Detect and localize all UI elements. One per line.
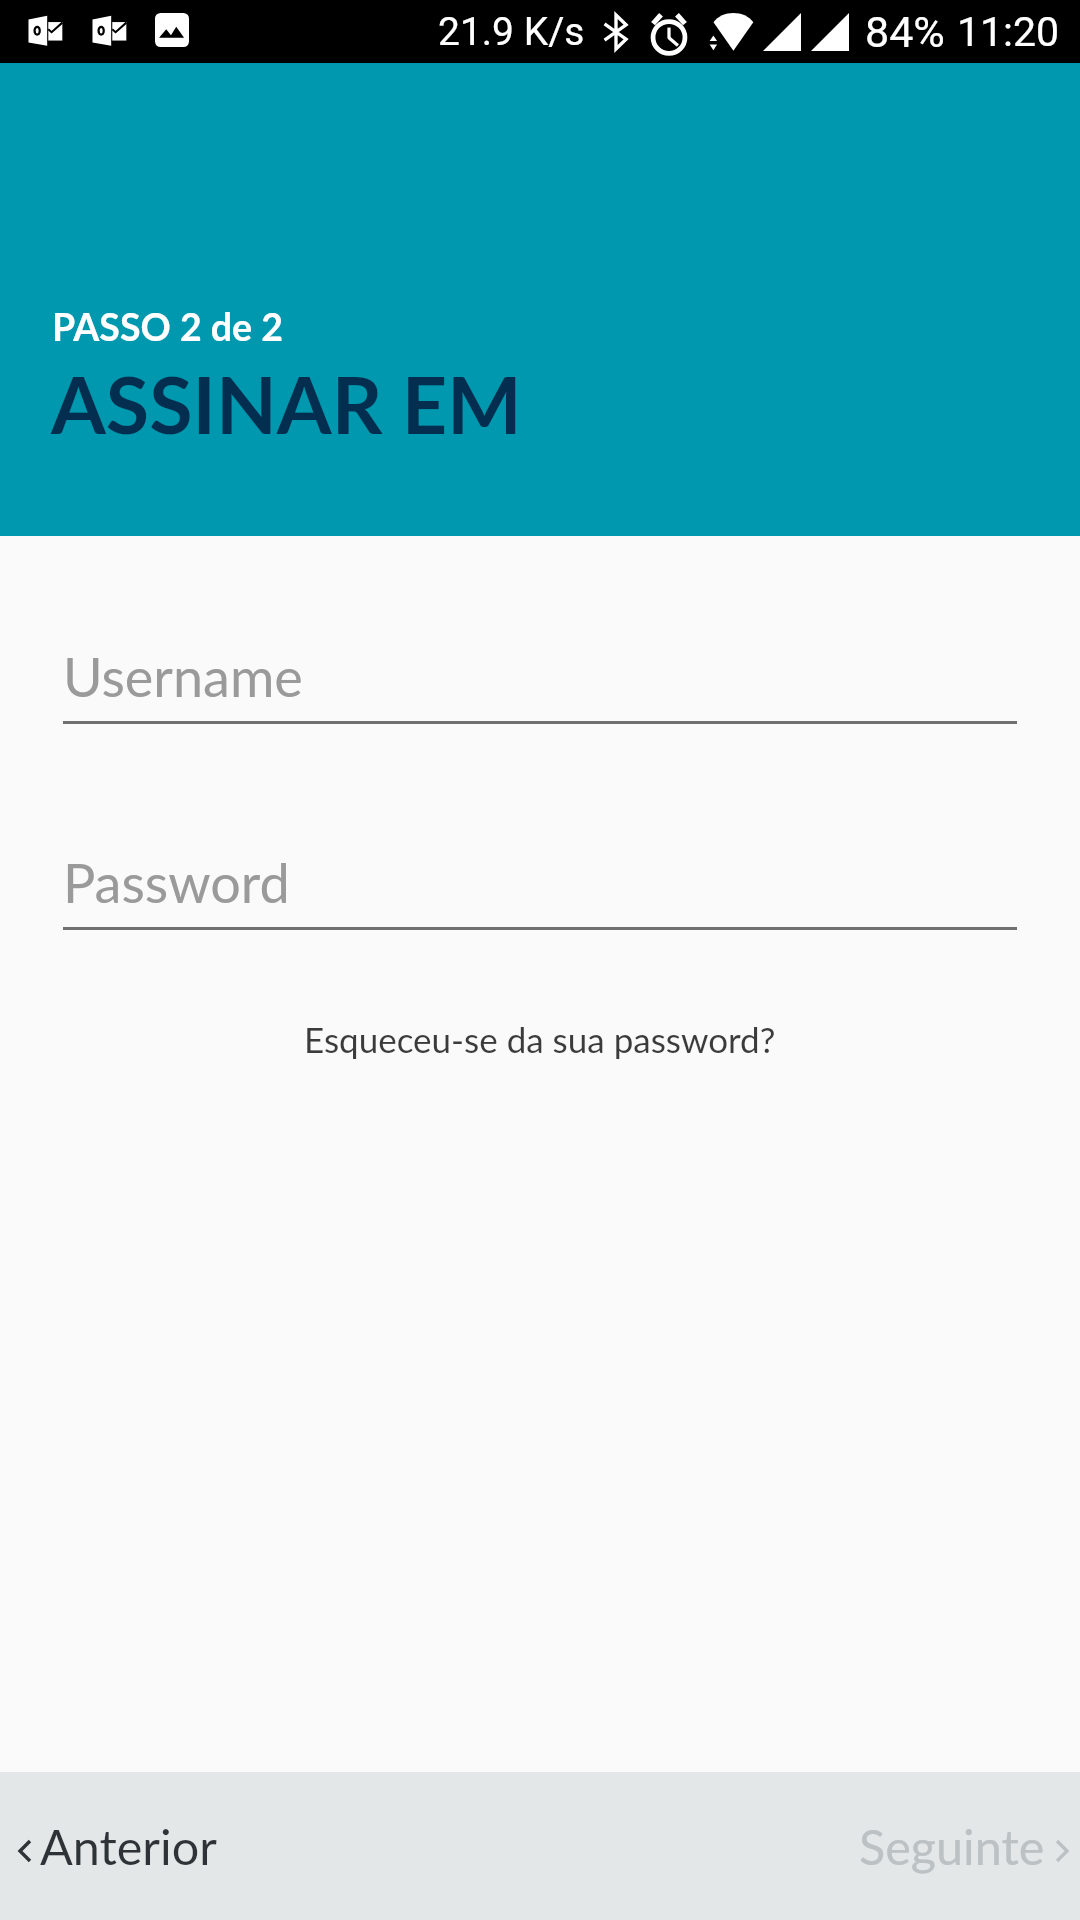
staticText: 11:20 [957,8,1060,56]
staticText: ASSINAR EM [51,356,522,451]
staticText: Seguinte [859,1817,1045,1875]
button[interactable]: Previous [0,1797,235,1895]
staticText: Password [63,850,290,915]
button[interactable]: Seguinte [841,1797,1080,1895]
other: Previous [20,1841,30,1861]
staticText: Esqueceu-se da sua password? [304,1018,776,1060]
staticText: Username [63,644,303,709]
other: Next [1057,1841,1067,1861]
staticText: PASSO 2 de 2 [52,304,283,349]
staticText: 84% [865,7,945,57]
button[interactable]: Password [0,850,1080,930]
button[interactable]: Esqueceu-se da sua password? [288,1012,792,1066]
staticText: 21.9 K/s [438,9,585,55]
button[interactable]: Username [0,644,1080,724]
staticText: Anterior [40,1817,217,1875]
